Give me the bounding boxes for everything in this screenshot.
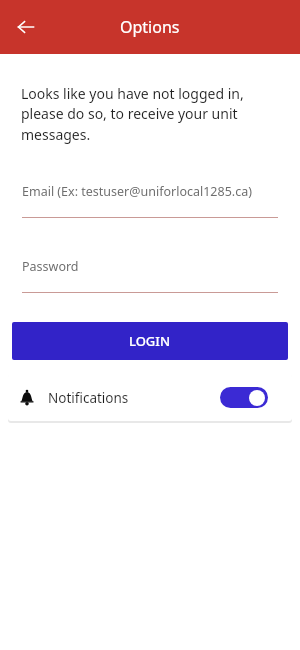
staticText: LOGIN	[129, 332, 171, 350]
staticText: Options	[120, 16, 180, 38]
staticText: Notifications	[48, 389, 129, 407]
button[interactable]: Email (Ex: testuser@uniforlocal1285.ca)	[22, 183, 278, 218]
button[interactable]: Notifications	[8, 374, 292, 421]
button[interactable]: Notifications toggle, on	[220, 387, 268, 408]
staticText: Password	[22, 258, 79, 275]
button[interactable]: Password	[22, 258, 278, 293]
button[interactable]: Back	[6, 7, 46, 47]
staticText: Email (Ex: testuser@uniforlocal1285.ca)	[22, 183, 252, 200]
button[interactable]: LOGIN	[12, 322, 288, 360]
staticText: Looks like you have not logged in, pleas…	[21, 84, 274, 145]
